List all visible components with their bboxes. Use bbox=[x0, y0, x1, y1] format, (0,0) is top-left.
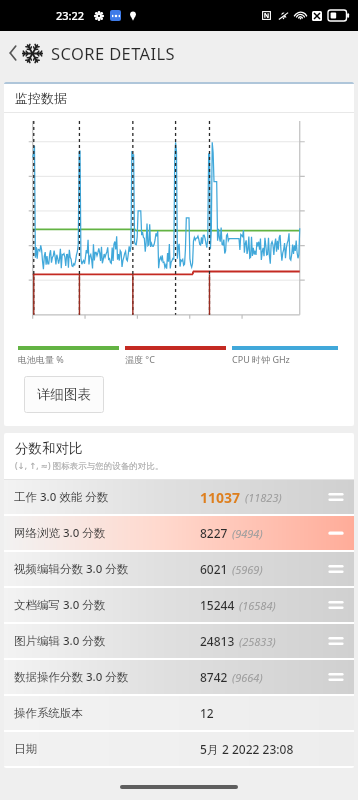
staticText: 视频编辑分数 3.0 分数 bbox=[14, 561, 200, 577]
staticText: 24813 bbox=[200, 633, 235, 649]
button[interactable]: 视频编辑分数 3.0 分数 bbox=[4, 552, 354, 586]
button[interactable]: 数据操作分数 3.0 分数 bbox=[4, 660, 354, 694]
staticText: 12 bbox=[200, 705, 214, 721]
staticText: 监控数据 bbox=[15, 90, 67, 106]
staticText: 电池电量 % bbox=[18, 353, 64, 365]
staticText: CPU 时钟 GHz bbox=[232, 353, 290, 365]
button[interactable]: 操作系统版本 bbox=[4, 696, 354, 730]
staticText: 15244 bbox=[200, 597, 235, 613]
staticText: 操作系统版本 bbox=[14, 706, 200, 720]
staticText: 8227 bbox=[200, 525, 228, 541]
button[interactable]: Home bbox=[120, 785, 238, 789]
staticText: 6021 bbox=[200, 561, 228, 577]
staticText: 图片编辑 3.0 分数 bbox=[14, 633, 200, 649]
staticText: 23:22 bbox=[56, 8, 85, 23]
button[interactable]: 工作 3.0 效能 分数 bbox=[4, 480, 354, 514]
button[interactable]: 网络浏览 3.0 分数 bbox=[4, 516, 354, 550]
button[interactable]: 详细图表 bbox=[24, 376, 104, 413]
staticText: 网络浏览 3.0 分数 bbox=[14, 525, 200, 541]
staticText: 8742 bbox=[200, 669, 228, 685]
staticText: 数据操作分数 3.0 分数 bbox=[14, 669, 200, 685]
staticText: 分数和对比 bbox=[15, 440, 83, 457]
button[interactable]: Back bbox=[4, 36, 22, 70]
staticText: (11823) bbox=[245, 490, 282, 505]
staticText: SCORE DETAILS bbox=[51, 42, 176, 64]
staticText: 文档编写 3.0 分数 bbox=[14, 597, 200, 613]
staticText: (9494) bbox=[232, 526, 263, 541]
staticText: 5月 2 2022 23:08 bbox=[200, 741, 294, 757]
staticText: 11037 bbox=[200, 488, 241, 507]
button[interactable]: 日期 bbox=[4, 732, 354, 766]
staticText: (25833) bbox=[239, 634, 276, 649]
staticText: (5969) bbox=[232, 562, 263, 577]
button[interactable]: 文档编写 3.0 分数 bbox=[4, 588, 354, 622]
button[interactable]: 图片编辑 3.0 分数 bbox=[4, 624, 354, 658]
staticText: 详细图表 bbox=[37, 386, 91, 403]
staticText: 工作 3.0 效能 分数 bbox=[14, 489, 200, 505]
staticText: 日期 bbox=[14, 742, 200, 756]
staticText: (9664) bbox=[232, 670, 263, 685]
staticText: (16584) bbox=[239, 598, 276, 613]
staticText: (↓, ↑, ≈) 图标表示与您的设备的对比。 bbox=[15, 460, 164, 472]
staticText: 温度 °C bbox=[125, 353, 155, 365]
